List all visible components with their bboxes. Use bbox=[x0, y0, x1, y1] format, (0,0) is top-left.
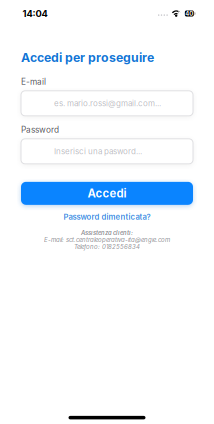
button[interactable]: Accedi bbox=[21, 182, 193, 205]
button[interactable]: Password dimenticata? bbox=[0, 212, 214, 222]
staticText: 14:04 bbox=[22, 8, 47, 19]
staticText: Assistenza clienti: bbox=[81, 229, 133, 236]
staticText: Inserisci una pasword... bbox=[54, 146, 142, 156]
staticText: E-mail bbox=[21, 77, 46, 87]
staticText: es. mario.rossi@gmail.com... bbox=[54, 98, 161, 108]
staticText: Password dimenticata? bbox=[63, 212, 150, 222]
staticText: Accedi per proseguire bbox=[21, 50, 154, 65]
staticText: Accedi bbox=[87, 186, 126, 200]
staticText: Telefono: 0182556834 bbox=[74, 243, 140, 250]
staticText: Password bbox=[21, 125, 59, 135]
staticText: E-mail: sct.centraleoperativa-ita@engie.… bbox=[44, 236, 170, 243]
staticText: 40 bbox=[185, 10, 193, 17]
